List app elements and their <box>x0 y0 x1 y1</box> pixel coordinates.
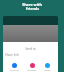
staticText: Instagram <box>27 69 37 72</box>
button[interactable]: Twitter <box>44 63 51 72</box>
button[interactable]: Instagram <box>27 63 37 72</box>
staticText: Facebook <box>10 69 19 72</box>
button[interactable]: Facebook <box>10 63 19 72</box>
staticText: Send to <box>3 47 58 51</box>
staticText: Twitter <box>44 69 51 72</box>
staticText: friends <box>26 6 39 11</box>
staticText: Share link <box>5 53 19 57</box>
staticText: Share with <box>22 2 42 7</box>
